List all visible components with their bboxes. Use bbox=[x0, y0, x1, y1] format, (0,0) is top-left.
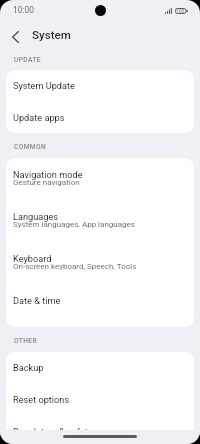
button[interactable]: Update apps bbox=[6, 102, 194, 133]
button[interactable]: System Update bbox=[6, 70, 194, 102]
staticText: System languages, App languages bbox=[13, 220, 135, 229]
staticText: Update apps bbox=[13, 112, 65, 123]
staticText: 10:00 bbox=[13, 5, 34, 15]
staticText: Backup bbox=[13, 362, 44, 373]
staticText: System bbox=[32, 28, 71, 42]
staticText: 100 bbox=[176, 8, 185, 14]
staticText: Regulatory & safety bbox=[13, 426, 93, 430]
staticText: System Update bbox=[13, 80, 75, 91]
button[interactable]: Back bbox=[4, 25, 27, 48]
staticText: Keyboard bbox=[13, 253, 52, 264]
button[interactable]: Navigation mode bbox=[6, 158, 194, 200]
staticText: Languages bbox=[13, 211, 59, 222]
button[interactable]: Date & time bbox=[6, 284, 194, 326]
button[interactable]: Keyboard bbox=[6, 242, 194, 284]
staticText: COMMON bbox=[14, 143, 47, 151]
staticText: Reset options bbox=[13, 394, 70, 405]
staticText: UPDATE bbox=[14, 56, 41, 64]
staticText: OTHER bbox=[14, 337, 38, 345]
button[interactable]: Backup bbox=[6, 352, 194, 384]
staticText: On-screen keyboard, Speech, Tools bbox=[13, 262, 137, 271]
staticText: Navigation mode bbox=[13, 169, 83, 180]
staticText: Date & time bbox=[13, 295, 61, 306]
staticText: Gesture navigation bbox=[13, 178, 80, 187]
button[interactable]: Reset options bbox=[6, 384, 194, 416]
button[interactable]: Regulatory & safety bbox=[6, 416, 194, 430]
button[interactable]: Languages bbox=[6, 200, 194, 242]
